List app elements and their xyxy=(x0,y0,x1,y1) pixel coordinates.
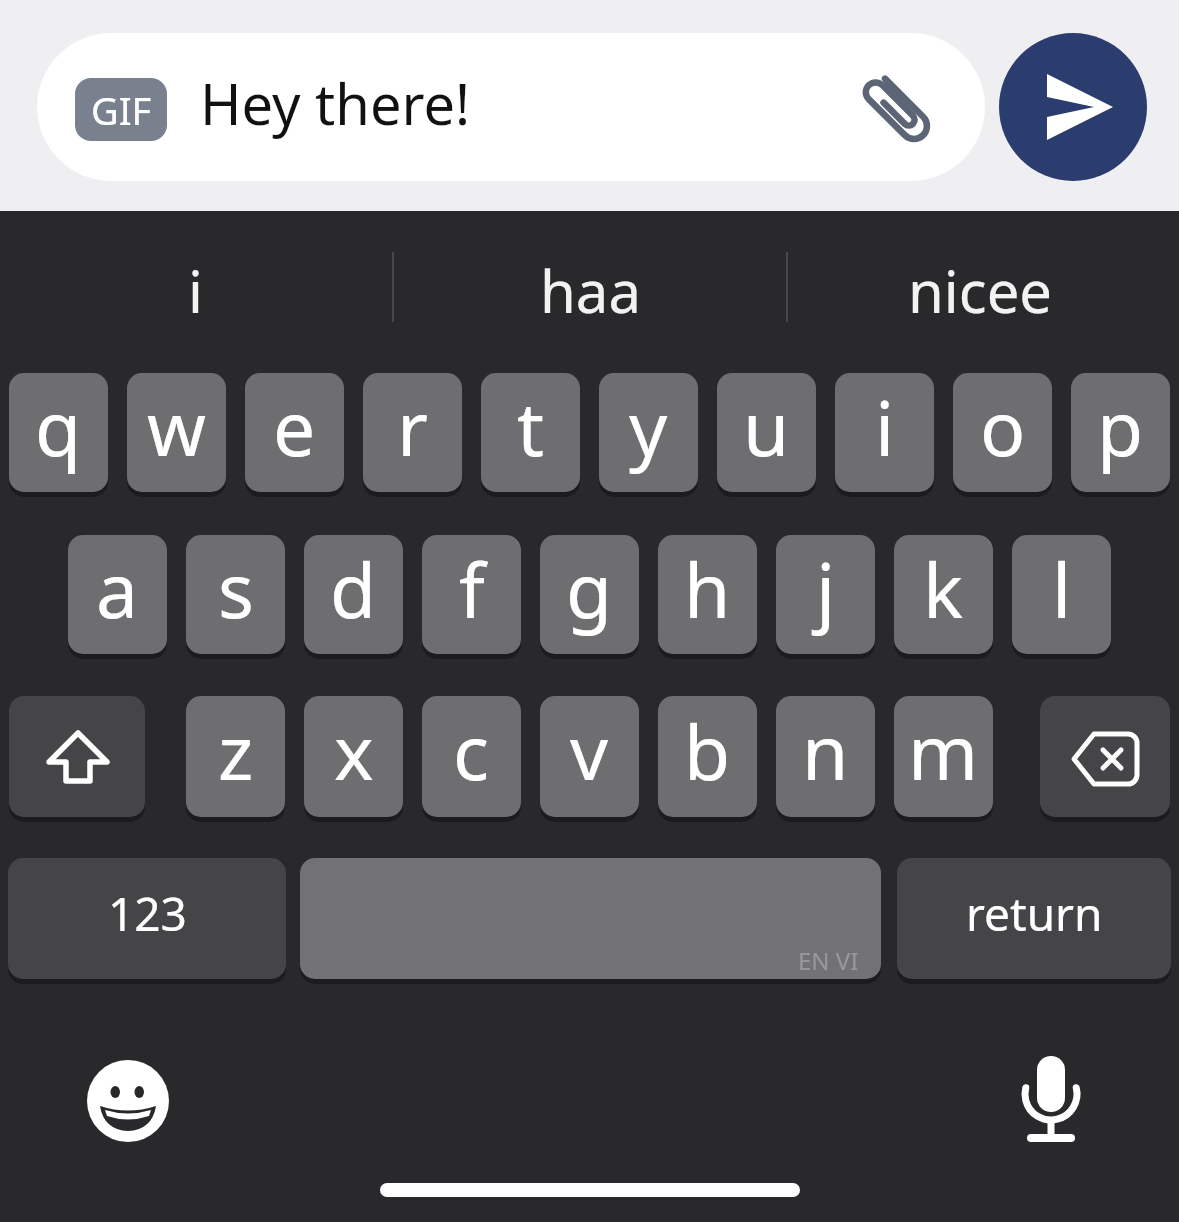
staticText: d xyxy=(330,538,377,640)
button[interactable]: i xyxy=(835,373,934,497)
button[interactable]: p xyxy=(1071,373,1170,497)
staticText: r xyxy=(397,376,428,478)
button[interactable]: k xyxy=(894,535,993,659)
button[interactable] xyxy=(1007,1054,1095,1146)
button[interactable]: e xyxy=(245,373,344,497)
staticText: a xyxy=(96,538,139,640)
staticText: x xyxy=(334,700,374,802)
button[interactable] xyxy=(999,33,1147,181)
button[interactable]: i xyxy=(30,245,360,335)
button[interactable]: w xyxy=(127,373,226,497)
staticText: return xyxy=(966,882,1103,945)
staticText: EN VI xyxy=(798,944,859,977)
staticText: haa xyxy=(540,251,641,330)
staticText: w xyxy=(147,376,206,478)
staticText: c xyxy=(453,700,490,802)
button[interactable]: g xyxy=(540,535,639,659)
button[interactable]: z xyxy=(186,696,285,822)
button[interactable]: d xyxy=(304,535,403,659)
button[interactable]: y xyxy=(599,373,698,497)
button[interactable]: q xyxy=(9,373,108,497)
staticText: o xyxy=(980,376,1026,478)
staticText: u xyxy=(743,376,790,478)
staticText: n xyxy=(802,700,849,802)
staticText: g xyxy=(566,538,613,640)
staticText: b xyxy=(684,700,731,802)
staticText: t xyxy=(517,376,545,478)
button[interactable] xyxy=(9,696,145,822)
staticText: l xyxy=(1052,538,1072,640)
staticText: v xyxy=(570,700,609,802)
button[interactable]: b xyxy=(658,696,757,822)
staticText: z xyxy=(218,700,254,802)
button[interactable]: h xyxy=(658,535,757,659)
button[interactable] xyxy=(86,1059,170,1143)
staticText: h xyxy=(684,538,731,640)
button[interactable]: o xyxy=(953,373,1052,497)
staticText: i xyxy=(188,251,203,330)
button[interactable]: m xyxy=(894,696,993,822)
button[interactable]: l xyxy=(1012,535,1111,659)
button[interactable]: s xyxy=(186,535,285,659)
staticText: i xyxy=(875,376,895,478)
button[interactable] xyxy=(1040,696,1170,822)
button[interactable]: GIF xyxy=(37,33,985,181)
staticText: s xyxy=(218,538,254,640)
button[interactable]: n xyxy=(776,696,875,822)
button[interactable]: t xyxy=(481,373,580,497)
button[interactable]: x xyxy=(304,696,403,822)
button[interactable]: j xyxy=(776,535,875,659)
button[interactable]: nicee xyxy=(810,245,1150,335)
button[interactable]: u xyxy=(717,373,816,497)
staticText: p xyxy=(1097,376,1144,478)
button[interactable]: haa xyxy=(420,245,760,335)
staticText: nicee xyxy=(908,251,1053,330)
button[interactable]: c xyxy=(422,696,521,822)
staticText: j xyxy=(816,538,836,640)
button[interactable]: GIF xyxy=(75,78,167,141)
staticText: GIF xyxy=(91,84,152,136)
staticText: q xyxy=(35,376,82,478)
staticText: y xyxy=(629,376,668,478)
button[interactable]: return xyxy=(897,858,1171,984)
button[interactable]: v xyxy=(540,696,639,822)
button[interactable]: a xyxy=(68,535,167,659)
staticText: k xyxy=(923,538,964,640)
staticText: m xyxy=(908,700,979,802)
button[interactable]: EN VI xyxy=(300,858,881,984)
staticText: f xyxy=(459,538,485,640)
staticText: Hey there! xyxy=(200,65,471,141)
staticText: 123 xyxy=(108,882,187,945)
button[interactable]: r xyxy=(363,373,462,497)
button[interactable]: f xyxy=(422,535,521,659)
button[interactable]: 123 xyxy=(8,858,286,984)
staticText: e xyxy=(273,376,316,478)
